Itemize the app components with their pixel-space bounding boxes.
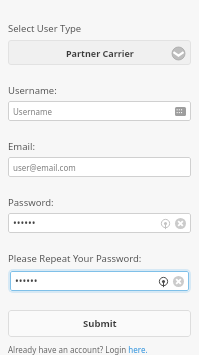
button[interactable]: •••••• bbox=[8, 213, 191, 233]
other: Show password bbox=[159, 277, 168, 286]
staticText: Please Repeat Your Password: bbox=[8, 252, 142, 265]
staticText: •••••• bbox=[15, 274, 38, 288]
staticText: Already have an account? Login here. bbox=[8, 344, 148, 355]
button[interactable]: Username bbox=[8, 101, 191, 121]
staticText: Password: bbox=[8, 196, 54, 209]
button[interactable]: user@email.com bbox=[8, 157, 191, 177]
staticText: Username bbox=[13, 106, 52, 117]
staticText: Partner Carrier bbox=[66, 47, 134, 59]
other: Open user type dropdown bbox=[171, 46, 185, 60]
other: Clear text bbox=[173, 276, 184, 287]
staticText: user@email.com bbox=[13, 162, 76, 173]
button[interactable]: •••••• bbox=[10, 271, 189, 291]
button[interactable]: Partner Carrier bbox=[8, 40, 191, 65]
staticText: Select User Type bbox=[8, 22, 82, 35]
other: Clear text bbox=[175, 218, 186, 229]
other: Keyboard bbox=[175, 107, 186, 116]
staticText: •••••• bbox=[13, 216, 36, 230]
staticText: Username: bbox=[8, 84, 57, 97]
staticText: Submit bbox=[83, 317, 117, 330]
button[interactable]: Submit bbox=[8, 310, 191, 337]
other: Show password bbox=[161, 219, 170, 228]
button[interactable]: Already have an account? Login here. bbox=[8, 344, 191, 355]
staticText: Email: bbox=[8, 140, 35, 153]
